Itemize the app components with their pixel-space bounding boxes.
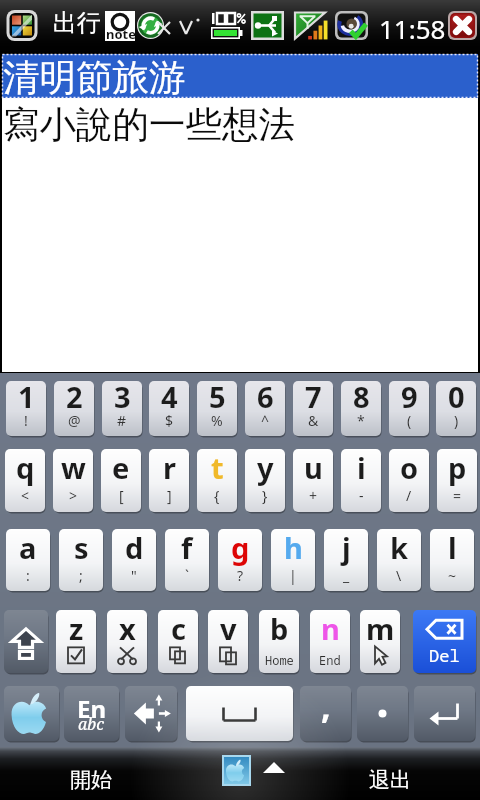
staticText: ; [79,566,83,585]
button[interactable]: Delete [413,610,476,673]
button[interactable]: r [149,449,189,512]
staticText: r [163,448,176,487]
staticText: ] [167,486,172,505]
staticText: & [308,411,319,430]
button[interactable]: t [197,449,237,512]
staticText: v [220,609,237,648]
button[interactable]: e [101,449,141,512]
button[interactable]: 5 [197,381,237,436]
staticText: l [448,528,457,567]
staticText: , [321,683,331,729]
button[interactable]: 4 [149,381,189,436]
button[interactable]: u [293,449,333,512]
staticText: [ [119,486,124,505]
button[interactable]: s [59,529,103,591]
button[interactable]: Space [186,686,293,741]
button[interactable]: 清明節旅游 [2,54,478,98]
button[interactable]: h [271,529,315,591]
staticText: y [257,448,274,487]
button[interactable]: n [310,610,350,673]
button[interactable]: 8 [341,381,381,436]
button[interactable]: 退出 [330,755,450,795]
button[interactable]: c [158,610,198,673]
staticText: # [117,411,127,430]
button[interactable]: Comma [300,686,351,741]
button[interactable]: q [5,449,45,512]
button[interactable]: Input panel [222,755,251,786]
button[interactable]: m [360,610,400,673]
staticText: x [119,609,136,648]
staticText: d [125,528,144,567]
button[interactable]: Arrow keys [125,686,177,741]
button[interactable]: 1 [6,381,46,436]
button[interactable]: Input language [64,686,119,741]
staticText: 退出 [369,767,411,793]
staticText: c [171,609,186,648]
button[interactable]: a [6,529,50,591]
staticText: q [16,448,35,487]
button[interactable]: z [56,610,96,673]
staticText: Home [265,652,294,668]
staticText: $ [165,411,174,430]
button[interactable]: 9 [389,381,429,436]
button[interactable]: j [324,529,368,591]
button[interactable]: w [53,449,93,512]
staticText: s [74,528,89,567]
button[interactable]: b [259,610,299,673]
staticText: < [21,486,30,505]
staticText: Del [429,644,460,667]
staticText: | [289,566,297,585]
staticText: 0 [448,377,465,416]
button[interactable]: 3 [102,381,142,436]
staticText: 4 [161,377,178,416]
staticText: End [319,652,341,668]
staticText: o [400,448,419,487]
staticText: 6 [257,377,274,416]
button[interactable]: k [377,529,421,591]
button[interactable]: Period [357,686,408,741]
button[interactable]: x [107,610,147,673]
staticText: } [262,486,268,505]
button[interactable]: Show input panel options [263,762,285,773]
staticText: f [181,528,193,567]
staticText: / [406,486,412,505]
button[interactable]: o [389,449,429,512]
button[interactable]: Enter [414,686,475,741]
button[interactable]: v [208,610,248,673]
button[interactable]: i [341,449,381,512]
staticText: > [69,486,78,505]
staticText: ( [407,411,412,430]
staticText: w [61,448,86,487]
button[interactable]: d [112,529,156,591]
staticText: - [359,486,364,505]
staticText: { [214,486,220,505]
button[interactable]: g [218,529,262,591]
button[interactable]: 7 [293,381,333,436]
staticText: 出行 [53,8,101,38]
staticText: 開始 [70,767,112,793]
staticText: ! [24,411,28,430]
staticText: % [211,411,223,430]
button[interactable]: p [437,449,477,512]
staticText: 11:58 [379,11,446,46]
button[interactable]: y [245,449,285,512]
staticText: 1 [18,377,35,416]
button[interactable]: Menu [4,686,59,741]
button[interactable]: Shift [4,610,48,673]
staticText: t [211,448,224,487]
button[interactable]: 開始 [30,755,150,795]
staticText: 2 [66,377,83,416]
staticText: 5 [209,377,226,416]
staticText: p [448,448,467,487]
staticText: m [366,609,395,648]
button[interactable]: 6 [245,381,285,436]
button[interactable]: 0 [436,381,476,436]
staticText: e [112,448,130,487]
button[interactable]: l [430,529,474,591]
staticText: b [270,609,289,648]
button[interactable]: f [165,529,209,591]
staticText: abc [78,713,105,735]
staticText: n [321,609,340,648]
button[interactable]: 2 [54,381,94,436]
staticText: h [284,528,303,567]
